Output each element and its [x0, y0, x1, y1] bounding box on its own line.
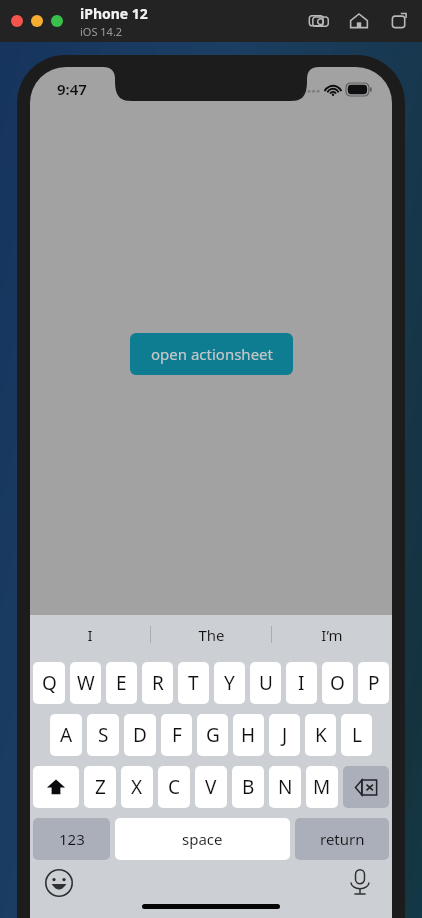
staticText: 9:47 — [57, 79, 87, 99]
staticText: T — [188, 670, 199, 696]
button[interactable]: D — [124, 714, 156, 756]
button[interactable]: space — [115, 818, 290, 860]
button[interactable]: I — [30, 615, 150, 654]
button[interactable]: The — [151, 615, 271, 654]
button[interactable]: C — [158, 766, 190, 808]
button[interactable]: Minimize — [31, 15, 43, 27]
button[interactable]: W — [70, 662, 101, 704]
button[interactable]: Y — [214, 662, 245, 704]
button[interactable]: V — [195, 766, 227, 808]
button[interactable]: Z — [84, 766, 116, 808]
button[interactable]: B — [232, 766, 264, 808]
staticText: Y — [224, 670, 235, 696]
staticText: return — [320, 829, 365, 849]
staticText: K — [315, 722, 327, 748]
button[interactable]: E — [106, 662, 137, 704]
button[interactable]: M — [306, 766, 338, 808]
button[interactable]: F — [161, 714, 192, 756]
staticText: B — [242, 774, 255, 800]
button[interactable]: Dictation — [346, 868, 374, 896]
button[interactable]: U — [250, 662, 281, 704]
button[interactable]: L — [341, 714, 372, 756]
staticText: H — [241, 722, 256, 748]
button[interactable]: A — [50, 714, 82, 756]
button[interactable]: I — [286, 662, 317, 704]
staticText: open actionsheet — [151, 344, 273, 364]
button[interactable]: S — [87, 714, 119, 756]
button[interactable]: P — [358, 662, 389, 704]
staticText: space — [182, 829, 223, 849]
staticText: 123 — [59, 829, 85, 849]
staticText: R — [152, 670, 164, 696]
button[interactable]: Screenshot — [308, 10, 330, 32]
staticText: C — [168, 774, 181, 800]
button[interactable]: open actionsheet — [130, 333, 293, 375]
staticText: X — [131, 774, 143, 800]
button[interactable]: K — [305, 714, 336, 756]
button[interactable]: N — [269, 766, 301, 808]
staticText: Z — [95, 774, 106, 800]
button[interactable]: Backspace — [343, 766, 389, 808]
staticText: I’m — [321, 625, 343, 645]
button[interactable]: Home — [348, 10, 370, 32]
button[interactable]: Emoji — [44, 868, 74, 898]
button[interactable]: G — [197, 714, 228, 756]
staticText: I — [298, 670, 305, 696]
staticText: O — [330, 670, 345, 696]
staticText: M — [313, 774, 331, 800]
staticText: D — [133, 722, 147, 748]
staticText: W — [77, 670, 95, 696]
staticText: P — [368, 670, 380, 696]
button[interactable]: H — [233, 714, 264, 756]
staticText: N — [278, 774, 293, 800]
staticText: S — [98, 722, 109, 748]
staticText: The — [198, 625, 225, 645]
button[interactable]: Zoom — [51, 15, 63, 27]
button[interactable]: T — [178, 662, 209, 704]
button[interactable]: Close — [11, 15, 23, 27]
button[interactable]: I’m — [272, 615, 392, 654]
staticText: A — [60, 722, 73, 748]
staticText: V — [205, 774, 217, 800]
staticText: U — [259, 670, 273, 696]
button[interactable]: O — [322, 662, 353, 704]
staticText: G — [206, 722, 220, 748]
staticText: I — [87, 625, 93, 645]
staticText: E — [116, 670, 127, 696]
button[interactable]: R — [142, 662, 173, 704]
staticText: L — [352, 722, 362, 748]
staticText: Q — [42, 670, 57, 696]
button[interactable]: X — [121, 766, 153, 808]
button[interactable]: Q — [33, 662, 65, 704]
staticText: F — [172, 722, 182, 748]
staticText: J — [282, 722, 288, 748]
button[interactable]: 123 — [33, 818, 110, 860]
staticText: iPhone 12 — [80, 4, 148, 23]
button[interactable]: Rotate — [388, 10, 410, 32]
button[interactable]: J — [269, 714, 300, 756]
button[interactable]: Shift — [33, 766, 79, 808]
button[interactable]: return — [295, 818, 389, 860]
staticText: iOS 14.2 — [80, 24, 123, 39]
